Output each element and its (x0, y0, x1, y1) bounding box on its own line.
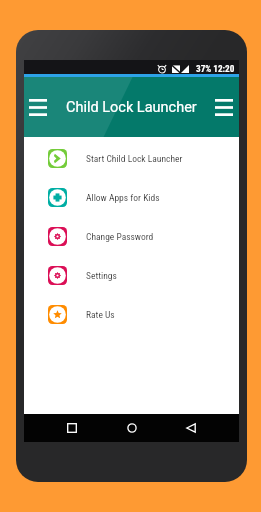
button[interactable]: Rate Us (24, 295, 239, 334)
button[interactable]: Settings (24, 256, 239, 295)
button[interactable]: Change Password (24, 217, 239, 256)
staticText: Allow Apps for Kids (86, 192, 160, 203)
button[interactable]: Allow Apps for Kids (24, 178, 239, 217)
staticText: Start Child Lock Launcher (86, 153, 183, 164)
staticText: Change Password (86, 231, 154, 242)
button[interactable]: Recents (61, 417, 83, 439)
button[interactable]: Start Child Lock Launcher (24, 139, 239, 178)
button[interactable]: Back (180, 417, 202, 439)
staticText: Rate Us (86, 309, 115, 320)
staticText: 37% 12:20 (196, 63, 235, 74)
staticText: Child Lock Launcher (66, 99, 197, 116)
button[interactable]: Menu (26, 95, 50, 119)
staticText: Settings (86, 270, 117, 281)
button[interactable]: More options (212, 95, 236, 119)
button[interactable]: Home (121, 417, 143, 439)
